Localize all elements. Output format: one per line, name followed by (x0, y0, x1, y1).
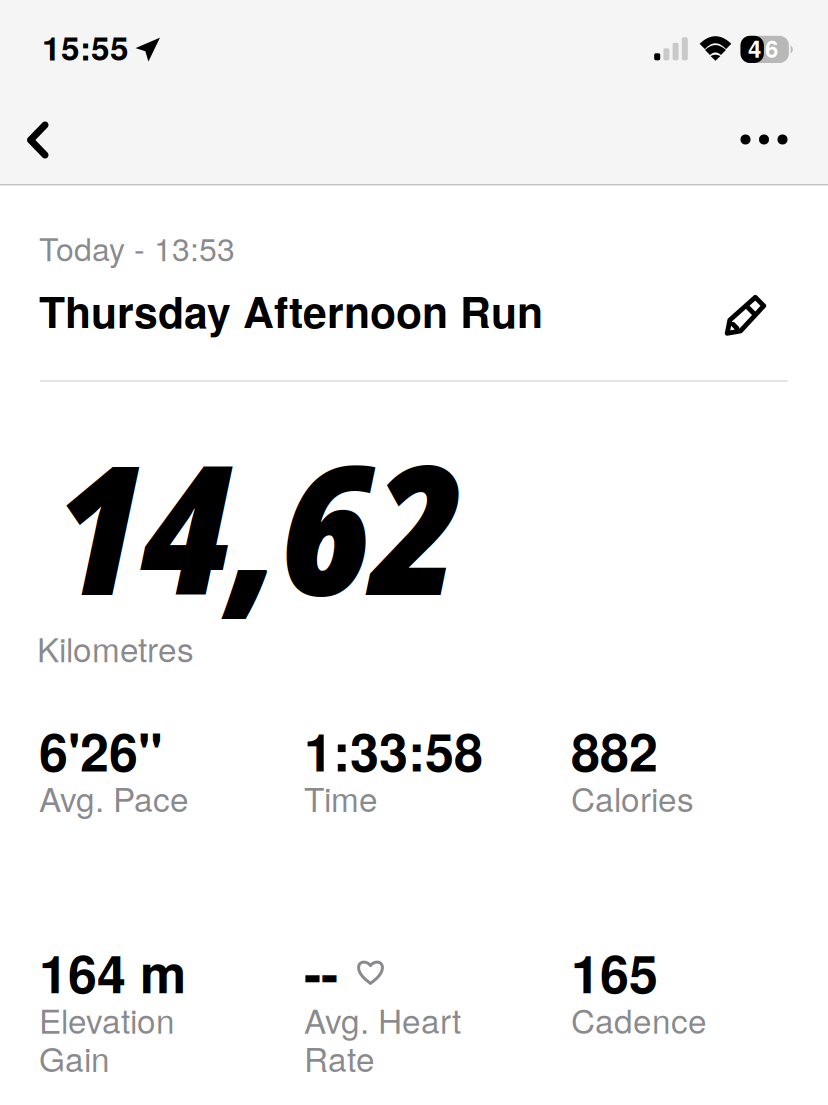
staticText: Cadence (571, 995, 707, 1043)
staticText: Elevation Gain (39, 995, 175, 1081)
staticText: Time (304, 774, 378, 821)
staticText: 46 (748, 31, 778, 65)
button[interactable]: Back (0, 96, 75, 183)
staticText: Avg. Heart Rate (304, 995, 461, 1081)
staticText: 882 (571, 713, 658, 787)
staticText: 165 (571, 935, 658, 1009)
staticText: Today - 13:53 (39, 225, 235, 270)
button[interactable]: More options (709, 96, 819, 182)
staticText: Kilometres (37, 624, 194, 672)
staticText: 14,62 (51, 404, 460, 647)
staticText: Calories (571, 774, 694, 821)
staticText: 164 m (39, 935, 186, 1009)
staticText: 1:33:58 (304, 713, 483, 787)
staticText: 15:55 (42, 23, 129, 71)
button[interactable]: Edit workout name (706, 275, 783, 353)
staticText: Thursday Afternoon Run (39, 280, 543, 341)
staticText: 6'26" (39, 713, 163, 787)
staticText: Avg. Pace (39, 774, 189, 821)
staticText: -- (304, 935, 338, 1009)
